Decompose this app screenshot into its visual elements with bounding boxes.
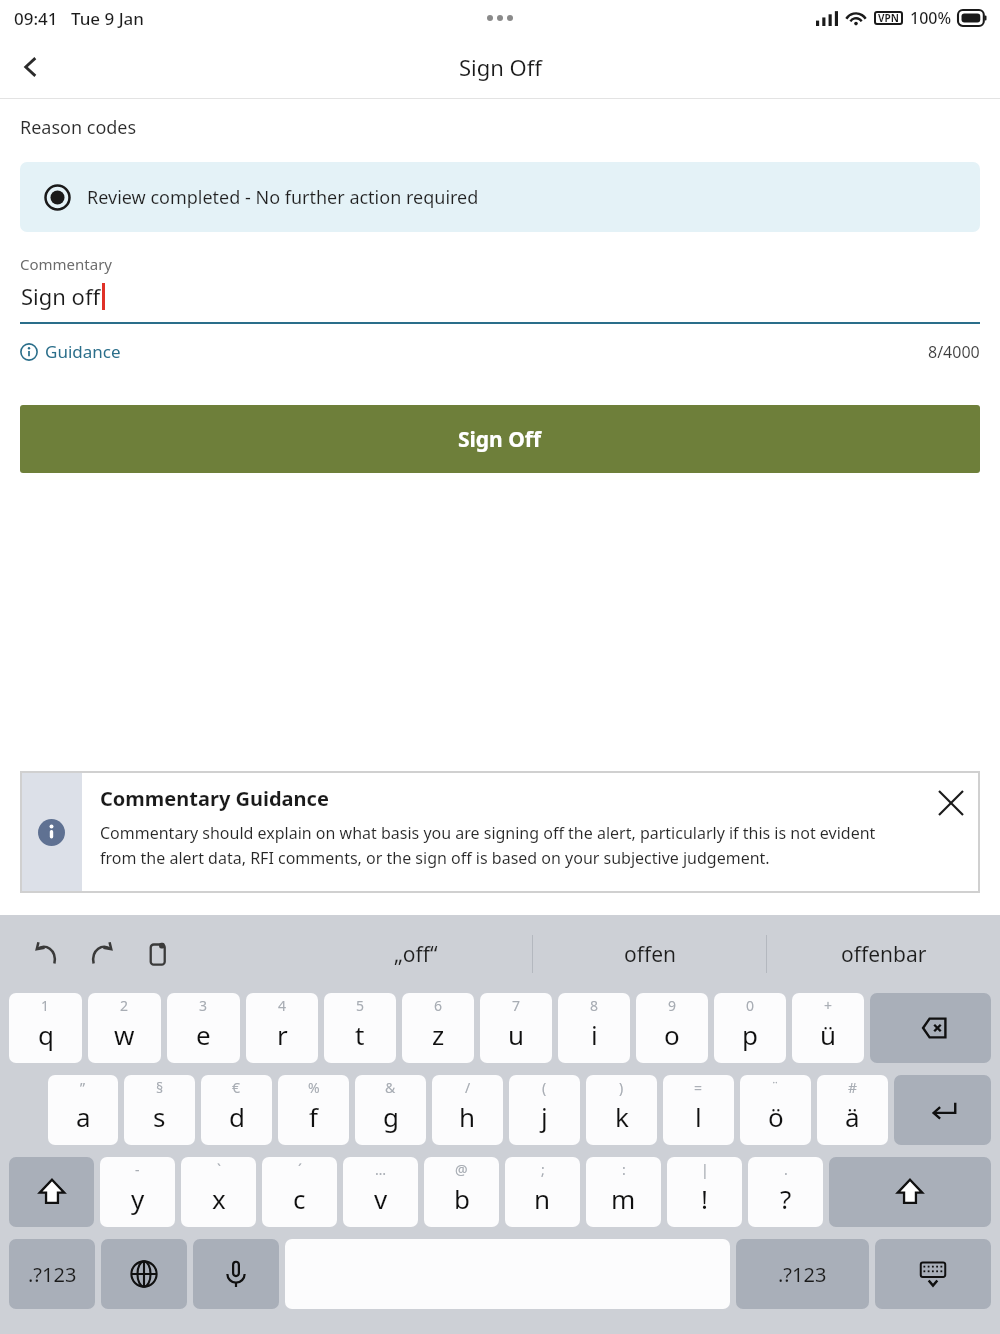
- staticText: `: [217, 1160, 221, 1179]
- button[interactable]: …: [343, 1157, 418, 1227]
- button[interactable]: Guidance: [20, 340, 121, 363]
- button[interactable]: -: [100, 1157, 175, 1227]
- staticText: offenbar: [841, 940, 927, 969]
- staticText: Commentary Guidance: [100, 785, 329, 812]
- staticText: 3: [199, 996, 208, 1015]
- staticText: .: [784, 1160, 788, 1179]
- button[interactable]: 5: [324, 993, 396, 1063]
- button[interactable]: Redo: [78, 930, 126, 978]
- staticText: Sign off: [21, 281, 101, 311]
- staticText: €: [232, 1078, 241, 1097]
- staticText: t: [355, 1017, 365, 1052]
- staticText: 5: [356, 996, 365, 1015]
- button[interactable]: Undo: [22, 930, 70, 978]
- button[interactable]: Clipboard: [134, 930, 182, 978]
- staticText: 2: [120, 996, 129, 1015]
- button[interactable]: Hide keyboard: [875, 1239, 991, 1309]
- button[interactable]: 1: [9, 993, 82, 1063]
- button[interactable]: offenbar: [767, 922, 1000, 986]
- staticText: 8: [590, 996, 599, 1015]
- button[interactable]: /: [432, 1075, 503, 1145]
- button[interactable]: Backspace: [870, 993, 991, 1063]
- button[interactable]: .?123: [736, 1239, 869, 1309]
- button[interactable]: Change language: [101, 1239, 187, 1309]
- staticText: ): [619, 1078, 624, 1097]
- staticText: i: [591, 1017, 598, 1052]
- button[interactable]: Back: [0, 36, 62, 98]
- button[interactable]: `: [181, 1157, 256, 1227]
- staticText: q: [38, 1017, 54, 1052]
- button[interactable]: §: [124, 1075, 195, 1145]
- staticText: (: [542, 1078, 547, 1097]
- staticText: -: [135, 1160, 140, 1179]
- button[interactable]: 7: [480, 993, 552, 1063]
- staticText: ä: [845, 1099, 860, 1134]
- staticText: 100%: [910, 7, 952, 29]
- staticText: Sign Off: [458, 425, 542, 454]
- staticText: 9: [668, 996, 677, 1015]
- button[interactable]: Enter: [894, 1075, 991, 1145]
- staticText: y: [131, 1181, 145, 1216]
- button[interactable]: Sign Off: [20, 405, 980, 473]
- button[interactable]: &: [355, 1075, 426, 1145]
- staticText: x: [212, 1181, 226, 1216]
- button[interactable]: €: [201, 1075, 272, 1145]
- button[interactable]: .: [748, 1157, 823, 1227]
- staticText: Guidance: [45, 340, 121, 363]
- staticText: u: [508, 1017, 525, 1052]
- staticText: Tue 9 Jan: [71, 7, 144, 30]
- button[interactable]: ¨: [740, 1075, 811, 1145]
- button[interactable]: 4: [246, 993, 318, 1063]
- staticText: v: [374, 1181, 388, 1216]
- button[interactable]: Review completed - No further action req…: [20, 162, 980, 232]
- button[interactable]: .?123: [9, 1239, 95, 1309]
- button[interactable]: :: [586, 1157, 661, 1227]
- staticText: l: [695, 1099, 702, 1134]
- button[interactable]: #: [817, 1075, 888, 1145]
- staticText: ?: [780, 1181, 792, 1216]
- staticText: m: [611, 1181, 636, 1216]
- button[interactable]: Shift: [829, 1157, 991, 1227]
- staticText: .?123: [28, 1261, 77, 1288]
- staticText: s: [153, 1099, 166, 1134]
- button[interactable]: |: [667, 1157, 742, 1227]
- button[interactable]: (: [509, 1075, 580, 1145]
- staticText: f: [309, 1099, 318, 1134]
- staticText: „off“: [394, 940, 438, 969]
- staticText: +: [824, 996, 833, 1015]
- button[interactable]: 9: [636, 993, 708, 1063]
- button[interactable]: ´: [262, 1157, 337, 1227]
- button[interactable]: 6: [402, 993, 474, 1063]
- staticText: 6: [434, 996, 443, 1015]
- button[interactable]: +: [792, 993, 864, 1063]
- staticText: ü: [820, 1017, 837, 1052]
- staticText: !: [701, 1181, 708, 1216]
- button[interactable]: @: [424, 1157, 499, 1227]
- staticText: o: [664, 1017, 680, 1052]
- staticText: .?123: [778, 1261, 827, 1288]
- staticText: offen: [624, 940, 676, 969]
- button[interactable]: Voice input: [193, 1239, 279, 1309]
- button[interactable]: „off“: [300, 922, 532, 986]
- button[interactable]: offen: [533, 922, 766, 986]
- button[interactable]: Shift: [9, 1157, 94, 1227]
- button[interactable]: 3: [167, 993, 240, 1063]
- staticText: a: [76, 1099, 91, 1134]
- staticText: ”: [80, 1078, 86, 1097]
- button[interactable]: %: [278, 1075, 349, 1145]
- staticText: %: [308, 1078, 320, 1097]
- button[interactable]: =: [663, 1075, 734, 1145]
- button[interactable]: 8: [558, 993, 630, 1063]
- staticText: z: [432, 1017, 445, 1052]
- button[interactable]: 0: [714, 993, 786, 1063]
- button[interactable]: ): [586, 1075, 657, 1145]
- button[interactable]: 2: [88, 993, 161, 1063]
- button[interactable]: ”: [48, 1075, 118, 1145]
- staticText: k: [615, 1099, 629, 1134]
- staticText: &: [385, 1078, 396, 1097]
- staticText: 8/4000: [928, 341, 980, 363]
- button[interactable]: ;: [505, 1157, 580, 1227]
- button[interactable]: Close: [922, 771, 980, 893]
- staticText: n: [534, 1181, 551, 1216]
